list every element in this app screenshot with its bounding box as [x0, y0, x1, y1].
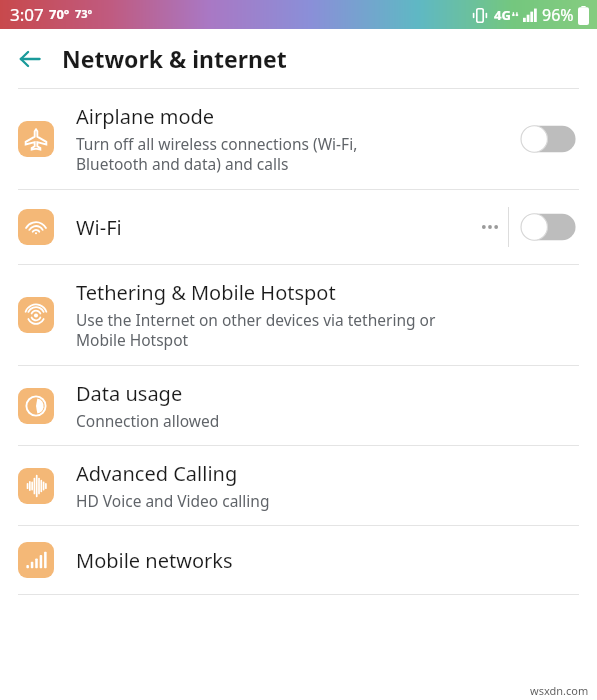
staticText: Connection allowed — [76, 410, 220, 431]
staticText: 3:07 — [10, 3, 44, 26]
staticText: 96% — [542, 4, 574, 26]
button[interactable]: Tethering & Mobile Hotspot — [0, 265, 597, 365]
staticText: Turn off all wireless connections (Wi-Fi… — [76, 133, 358, 175]
button[interactable]: Wi-Fi toggle — [521, 206, 583, 248]
staticText: HD Voice and Video calling — [76, 490, 270, 511]
button[interactable]: Data usage — [0, 366, 597, 445]
button[interactable]: Airplane mode — [0, 89, 597, 189]
staticText: Mobile networks — [76, 547, 233, 574]
staticText: Airplane mode — [76, 103, 215, 130]
staticText: Tethering & Mobile Hotspot — [76, 279, 336, 306]
button[interactable]: Back — [8, 37, 52, 81]
staticText: wsxdn.com — [530, 683, 589, 698]
button[interactable]: More options — [472, 209, 508, 245]
staticText: Data usage — [76, 380, 183, 407]
staticText: 4G — [494, 6, 511, 24]
staticText: Advanced Calling — [76, 460, 238, 487]
button[interactable]: Airplane mode toggle — [521, 118, 583, 160]
staticText: Use the Internet on other devices via te… — [76, 309, 436, 351]
staticText: 70° — [49, 5, 70, 23]
button[interactable]: Advanced Calling — [0, 446, 597, 525]
button[interactable]: Mobile networks — [0, 526, 597, 594]
button[interactable]: Wi-Fi — [0, 190, 597, 264]
staticText: Network & internet — [62, 43, 287, 74]
staticText: Wi-Fi — [76, 214, 122, 241]
staticText: 73° — [75, 6, 93, 21]
